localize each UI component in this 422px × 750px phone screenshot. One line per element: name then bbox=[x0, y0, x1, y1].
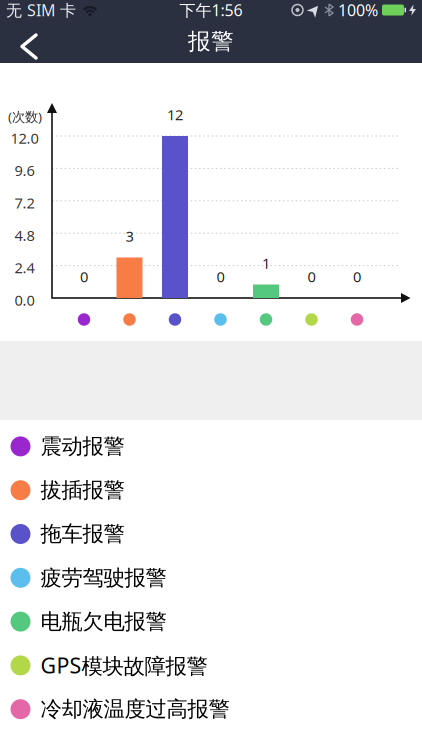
staticText: 震动报警 bbox=[40, 433, 124, 459]
staticText: (次数) bbox=[8, 108, 42, 125]
staticText: 3 bbox=[125, 226, 133, 246]
staticText: 7.2 bbox=[14, 193, 34, 213]
staticText: 0 bbox=[353, 267, 361, 286]
staticText: 1 bbox=[262, 253, 270, 273]
staticText: 疲劳驾驶报警 bbox=[40, 565, 166, 591]
staticText: 12 bbox=[167, 105, 183, 124]
staticText: 下午1:56 bbox=[179, 0, 242, 21]
staticText: GPS模块故障报警 bbox=[40, 651, 207, 680]
staticText: 拔插报警 bbox=[40, 477, 124, 503]
staticText: 0 bbox=[216, 267, 224, 286]
button[interactable]: 返回 bbox=[10, 20, 54, 63]
staticText: 12.0 bbox=[10, 128, 38, 148]
staticText: 100% bbox=[338, 0, 378, 21]
staticText: 无 SIM 卡 bbox=[6, 0, 76, 21]
staticText: 2.4 bbox=[14, 258, 34, 277]
staticText: 9.6 bbox=[14, 161, 34, 180]
staticText: 报警 bbox=[188, 28, 234, 55]
staticText: 冷却液温度过高报警 bbox=[40, 696, 229, 722]
staticText: 0 bbox=[80, 267, 88, 286]
staticText: 0 bbox=[307, 267, 315, 286]
staticText: 电瓶欠电报警 bbox=[40, 608, 166, 635]
staticText: 0.0 bbox=[14, 290, 34, 310]
staticText: 4.8 bbox=[14, 225, 34, 245]
staticText: 拖车报警 bbox=[40, 521, 124, 547]
